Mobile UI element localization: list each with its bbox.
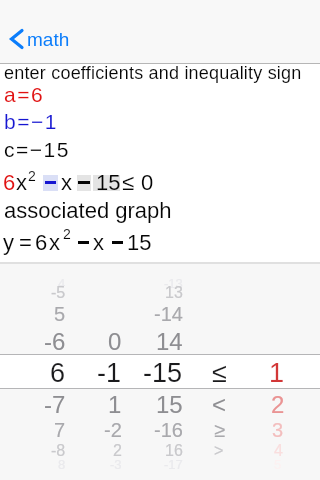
staticText: = xyxy=(19,230,32,255)
staticText: 15 xyxy=(96,170,121,195)
staticText: x xyxy=(16,170,27,195)
staticText: 2 xyxy=(28,168,36,184)
staticText: 2 xyxy=(271,391,285,418)
staticText: 1 xyxy=(269,358,285,388)
staticText: 4 xyxy=(58,276,66,291)
staticText: < xyxy=(212,391,227,418)
staticText: x xyxy=(49,230,60,255)
staticText: 8 xyxy=(58,457,66,472)
staticText: 13 xyxy=(165,284,183,302)
button[interactable] xyxy=(244,264,304,480)
staticText: -15 xyxy=(143,358,183,388)
staticText: -1 xyxy=(97,358,122,388)
staticText: 2 xyxy=(113,442,122,460)
button[interactable] xyxy=(129,264,189,480)
staticText: associated graph xyxy=(4,198,172,223)
staticText: -3 xyxy=(110,457,122,472)
button[interactable]: math xyxy=(8,21,78,57)
staticText: y xyxy=(3,230,14,255)
staticText: 3 xyxy=(272,419,284,441)
button[interactable] xyxy=(22,264,82,480)
staticText: 14 xyxy=(156,328,183,355)
staticText: -6 xyxy=(44,328,66,355)
staticText: 15 xyxy=(156,391,183,418)
staticText: 1 xyxy=(108,391,122,418)
staticText: -2 xyxy=(104,419,122,441)
staticText: 2 xyxy=(63,226,71,242)
staticText: -8 xyxy=(51,442,66,460)
staticText: -5 xyxy=(51,284,66,302)
staticText: 0 xyxy=(141,170,154,195)
staticText: a=6 xyxy=(4,83,45,106)
staticText: 16 xyxy=(165,442,183,460)
staticText: x xyxy=(61,170,72,195)
staticText: enter coefficients and inequality sign xyxy=(4,63,302,83)
staticText: 0 xyxy=(108,328,122,355)
staticText: ≤ xyxy=(122,170,135,195)
staticText: 15 xyxy=(127,230,152,255)
staticText: > xyxy=(214,442,224,460)
staticText: -7 xyxy=(44,391,66,418)
staticText: 6 xyxy=(3,170,16,195)
staticText: 5 xyxy=(54,303,66,325)
staticText: c=−15 xyxy=(4,138,70,161)
staticText: 7 xyxy=(54,419,66,441)
button[interactable] xyxy=(189,264,249,480)
staticText: 6 xyxy=(35,230,48,255)
staticText: math xyxy=(27,29,70,50)
staticText: -17 xyxy=(164,457,183,472)
staticText: ≤ xyxy=(212,358,227,388)
staticText: ≥ xyxy=(214,419,225,441)
staticText: 6 xyxy=(50,358,66,388)
staticText: -16 xyxy=(154,419,183,441)
staticText: b=−1 xyxy=(4,110,58,133)
staticText: x xyxy=(93,230,104,255)
button[interactable] xyxy=(80,264,140,480)
staticText: 4 xyxy=(274,442,283,460)
staticText: -14 xyxy=(154,303,183,325)
staticText: -13 xyxy=(164,276,183,291)
